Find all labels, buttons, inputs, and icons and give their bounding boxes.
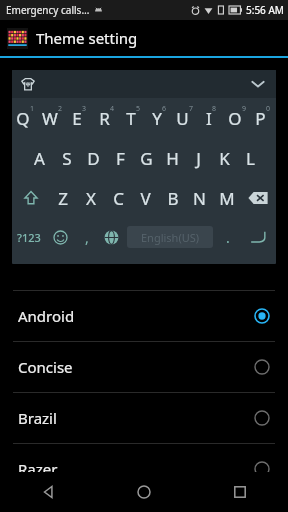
staticText: .	[226, 228, 230, 247]
staticText: S	[62, 147, 72, 170]
staticText: X	[86, 187, 96, 210]
button[interactable]: Theme	[16, 72, 40, 96]
button[interactable]: M	[213, 178, 240, 218]
staticText: J	[196, 147, 201, 170]
button[interactable]: I	[198, 98, 224, 138]
button[interactable]: X	[77, 178, 105, 218]
button[interactable]: Recent apps	[192, 472, 288, 512]
staticText: ?123	[17, 230, 41, 245]
button[interactable]: K	[211, 138, 237, 178]
staticText: H	[166, 147, 179, 170]
staticText: M	[219, 187, 235, 210]
button[interactable]: Shift	[12, 178, 49, 218]
staticText: G	[140, 147, 153, 170]
button[interactable]: P	[250, 98, 276, 138]
staticText: ,	[85, 228, 89, 247]
staticText: B	[167, 187, 179, 210]
button[interactable]: F	[107, 138, 133, 178]
staticText: 3	[82, 104, 87, 114]
staticText: 4	[110, 104, 115, 114]
button[interactable]: Backspace	[240, 178, 276, 218]
staticText: 5:56 AM	[246, 3, 284, 17]
button[interactable]: E	[66, 98, 93, 138]
staticText: V	[140, 187, 151, 210]
button[interactable]: Enter	[239, 218, 276, 256]
staticText: C	[113, 187, 124, 210]
button[interactable]: Back	[0, 472, 96, 512]
button[interactable]: ?123	[12, 218, 46, 256]
staticText: N	[193, 187, 206, 210]
button[interactable]: B	[159, 178, 186, 218]
staticText: U	[176, 107, 189, 130]
staticText: L	[246, 147, 255, 170]
button[interactable]: O	[224, 98, 250, 138]
button[interactable]: Y	[146, 98, 172, 138]
button[interactable]: L	[237, 138, 263, 178]
button[interactable]: J	[185, 138, 211, 178]
staticText: F	[116, 147, 125, 170]
button[interactable]: H	[159, 138, 185, 178]
staticText: 7	[189, 104, 194, 114]
staticText: P	[255, 107, 266, 130]
button[interactable]: Razer	[0, 444, 288, 494]
staticText: Q	[16, 107, 30, 130]
button[interactable]: D	[80, 138, 107, 178]
button[interactable]: R	[93, 98, 120, 138]
staticText: R	[99, 107, 110, 130]
button[interactable]: A	[26, 138, 53, 178]
staticText: Concise	[18, 357, 73, 377]
button[interactable]: English(US)	[127, 226, 213, 248]
staticText: 2	[58, 104, 63, 114]
staticText: O	[228, 107, 242, 130]
staticText: 5	[136, 104, 141, 114]
staticText: Brazil	[18, 408, 57, 428]
staticText: 8	[212, 104, 217, 114]
button[interactable]: Q	[12, 98, 39, 138]
staticText: 6	[162, 104, 167, 114]
button[interactable]: Concise	[0, 342, 288, 392]
staticText: K	[219, 147, 230, 170]
staticText: 0	[266, 104, 271, 114]
staticText: Emergency calls…	[6, 3, 90, 17]
button[interactable]: .	[216, 218, 239, 256]
button[interactable]: U	[172, 98, 198, 138]
staticText: E	[72, 107, 82, 130]
staticText: W	[42, 107, 58, 130]
staticText: Android	[18, 306, 75, 326]
button[interactable]: S	[53, 138, 80, 178]
button[interactable]: Change language	[98, 218, 124, 256]
staticText: Theme setting	[36, 28, 138, 48]
button[interactable]: ,	[75, 218, 98, 256]
button[interactable]: W	[39, 98, 66, 138]
button[interactable]: N	[186, 178, 213, 218]
staticText: I	[206, 107, 212, 130]
staticText: Y	[152, 107, 162, 130]
staticText: Z	[58, 187, 68, 210]
button[interactable]: Z	[49, 178, 77, 218]
staticText: 9	[242, 104, 247, 114]
staticText: Razer	[18, 459, 58, 479]
staticText: 1	[30, 104, 35, 114]
button[interactable]: Emoji	[46, 218, 75, 256]
button[interactable]: T	[120, 98, 146, 138]
button[interactable]: V	[132, 178, 159, 218]
button[interactable]: Brazil	[0, 393, 288, 443]
button[interactable]: G	[133, 138, 159, 178]
button[interactable]: Hide keyboard	[246, 72, 270, 96]
button[interactable]: Android	[0, 291, 288, 341]
button[interactable]: Home	[96, 472, 192, 512]
button[interactable]: C	[105, 178, 132, 218]
staticText: English(US)	[141, 230, 200, 245]
staticText: T	[126, 107, 136, 130]
staticText: A	[34, 147, 45, 170]
staticText: D	[87, 147, 100, 170]
